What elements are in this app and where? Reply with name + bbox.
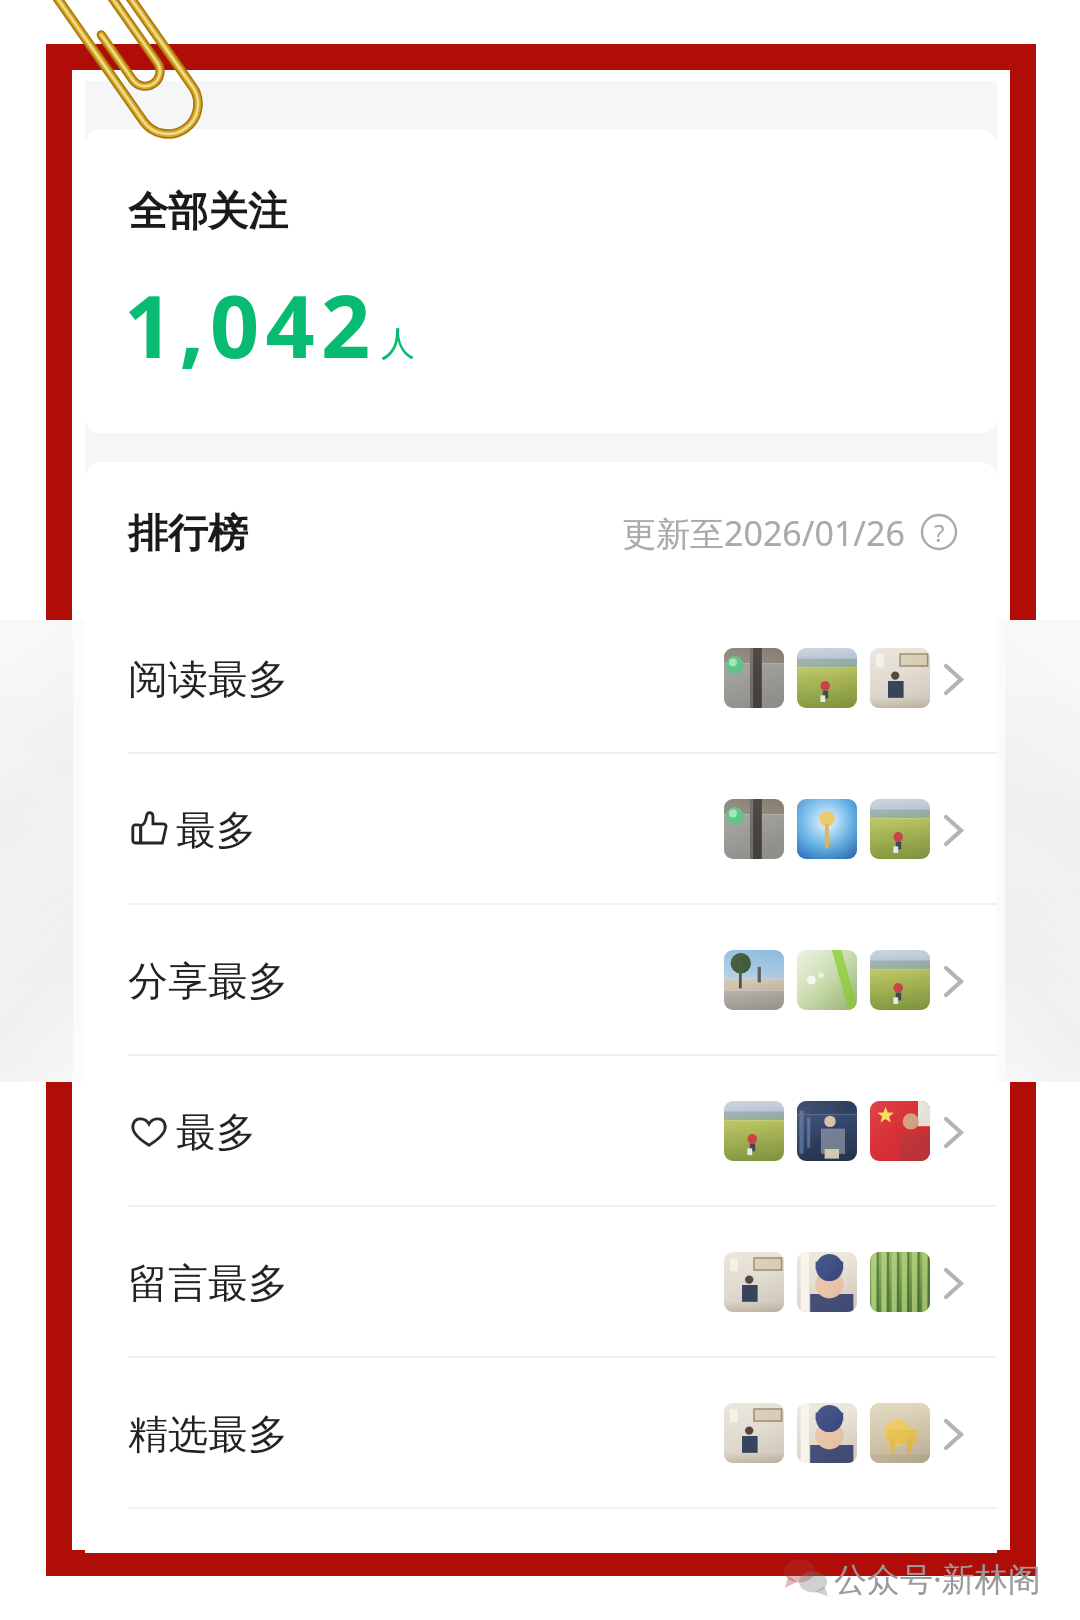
button[interactable]: 阅读最多 bbox=[85, 603, 997, 754]
staticText: 更新至2026/01/26 bbox=[622, 510, 905, 556]
staticText: 阅读最多 bbox=[128, 654, 288, 704]
staticText: 精选最多 bbox=[128, 1409, 288, 1459]
button[interactable]: 精选最多 bbox=[85, 1358, 997, 1509]
staticText: 全部关注 bbox=[128, 186, 288, 236]
staticText: 最多 bbox=[176, 1107, 256, 1157]
button[interactable]: 最多 bbox=[85, 754, 997, 905]
staticText: 人 bbox=[381, 322, 415, 365]
staticText: 1,042 bbox=[124, 266, 377, 383]
staticText: 分享最多 bbox=[128, 956, 288, 1006]
button[interactable]: Help bbox=[921, 514, 957, 550]
staticText: 留言最多 bbox=[128, 1258, 288, 1308]
staticText: 最多 bbox=[176, 805, 256, 855]
staticText: ? bbox=[934, 516, 945, 549]
staticText: 公众号·新林阁 bbox=[834, 1556, 1041, 1601]
button[interactable]: 最多 bbox=[85, 1056, 997, 1207]
button[interactable]: 留言最多 bbox=[85, 1207, 997, 1358]
staticText: 排行榜 bbox=[128, 508, 248, 558]
button[interactable]: 分享最多 bbox=[85, 905, 997, 1056]
